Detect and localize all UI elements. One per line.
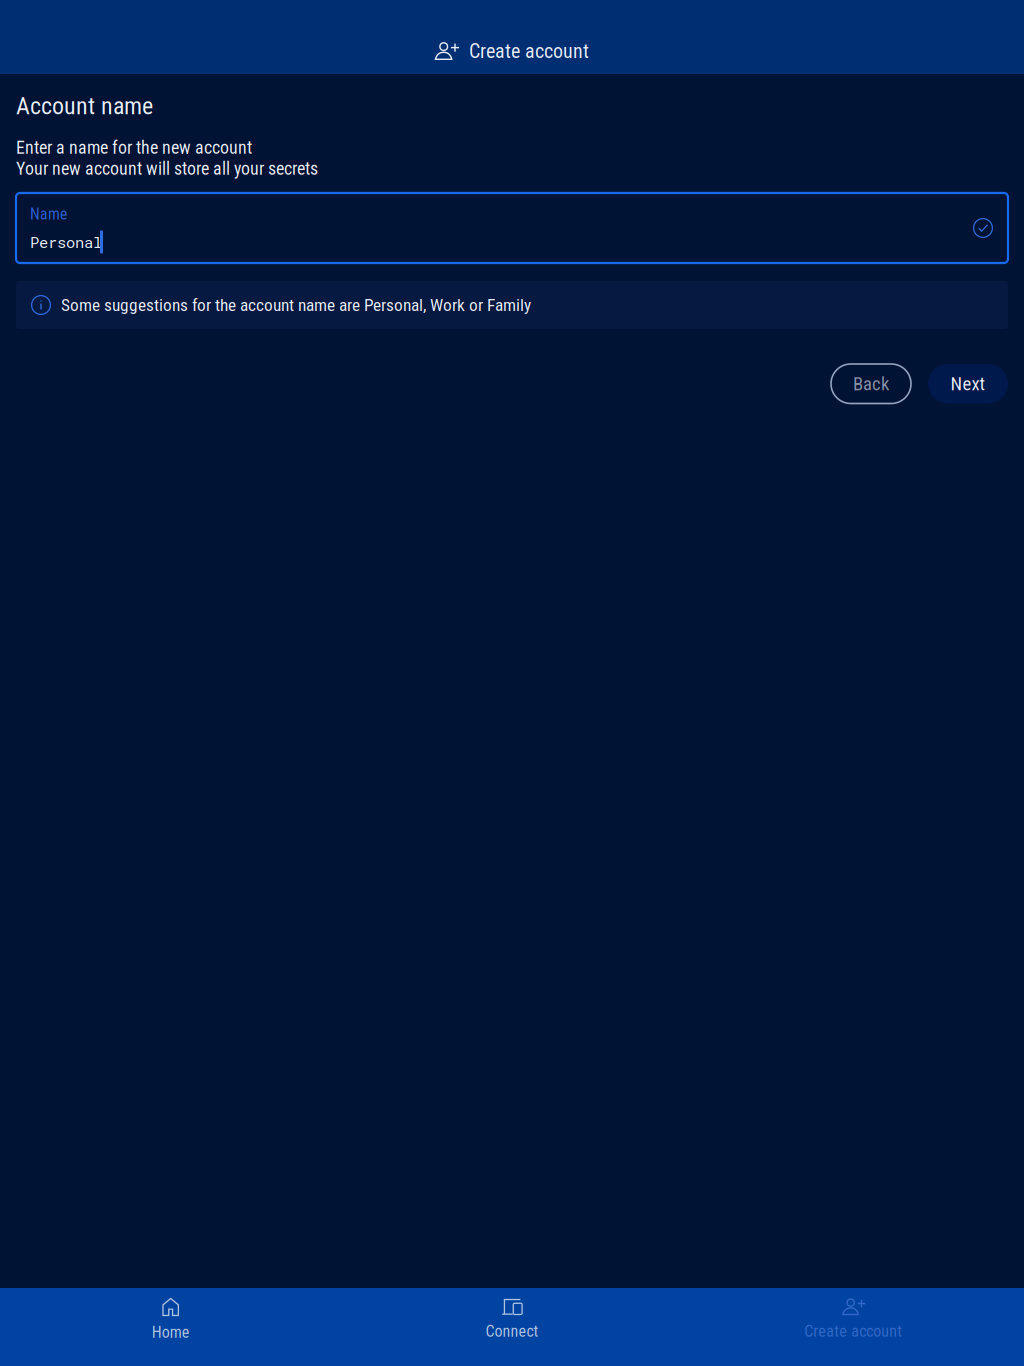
- button[interactable]: Create account: [683, 1288, 1024, 1366]
- staticText: Create account: [804, 1322, 902, 1341]
- button[interactable]: Home: [0, 1288, 341, 1366]
- staticText: Connect: [485, 1322, 538, 1341]
- staticText: Some suggestions for the account name ar…: [61, 295, 531, 315]
- button[interactable]: Connect: [341, 1288, 683, 1366]
- button[interactable]: Name: [16, 193, 1008, 263]
- button[interactable]: Next: [928, 364, 1008, 403]
- staticText: Enter a name for the new account: [16, 137, 252, 158]
- staticText: Account name: [16, 92, 153, 120]
- button[interactable]: Back: [831, 364, 911, 403]
- staticText: Personal: [30, 232, 102, 252]
- staticText: Home: [152, 1323, 190, 1342]
- staticText: Your new account will store all your sec…: [16, 158, 318, 179]
- staticText: Create account: [469, 40, 589, 63]
- staticText: Next: [950, 373, 985, 395]
- staticText: Back: [853, 373, 889, 395]
- staticText: Name: [30, 205, 67, 223]
